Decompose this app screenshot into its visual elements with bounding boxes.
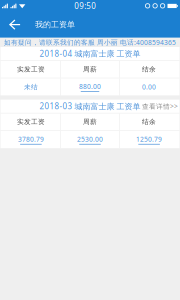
- staticText: 2530.00: [77, 135, 103, 143]
- staticText: 周薪: [83, 118, 97, 126]
- button[interactable]: 2530.00: [61, 131, 119, 148]
- staticText: 1250.79: [136, 135, 162, 143]
- staticText: 查看详情>>: [142, 102, 178, 111]
- staticText: 09:50: [74, 0, 96, 11]
- button[interactable]: 查看详情>>: [142, 100, 179, 113]
- staticText: 实发工资: [17, 118, 45, 126]
- staticText: 实发工资: [17, 65, 45, 73]
- staticText: 3780.79: [18, 135, 44, 143]
- staticText: 0.00: [142, 83, 156, 91]
- staticText: 880.00: [79, 82, 101, 91]
- button[interactable]: 1250.79: [120, 131, 178, 148]
- button[interactable]: 880.00: [61, 78, 119, 96]
- staticText: 未结: [24, 83, 38, 91]
- staticText: 2018-04 城南富士康 工资单: [39, 48, 140, 59]
- staticText: 周薪: [83, 65, 97, 73]
- staticText: 我的工资单: [35, 20, 75, 29]
- staticText: 如有疑问，请联系我们的客服 周小丽 电话:4008594365: [4, 38, 176, 47]
- staticText: 结余: [142, 65, 156, 73]
- button[interactable]: 3780.79: [2, 131, 60, 148]
- staticText: 2018-03 城南富士康 工资单: [39, 101, 140, 111]
- button[interactable]: Back: [3, 12, 27, 38]
- staticText: 结余: [142, 118, 156, 126]
